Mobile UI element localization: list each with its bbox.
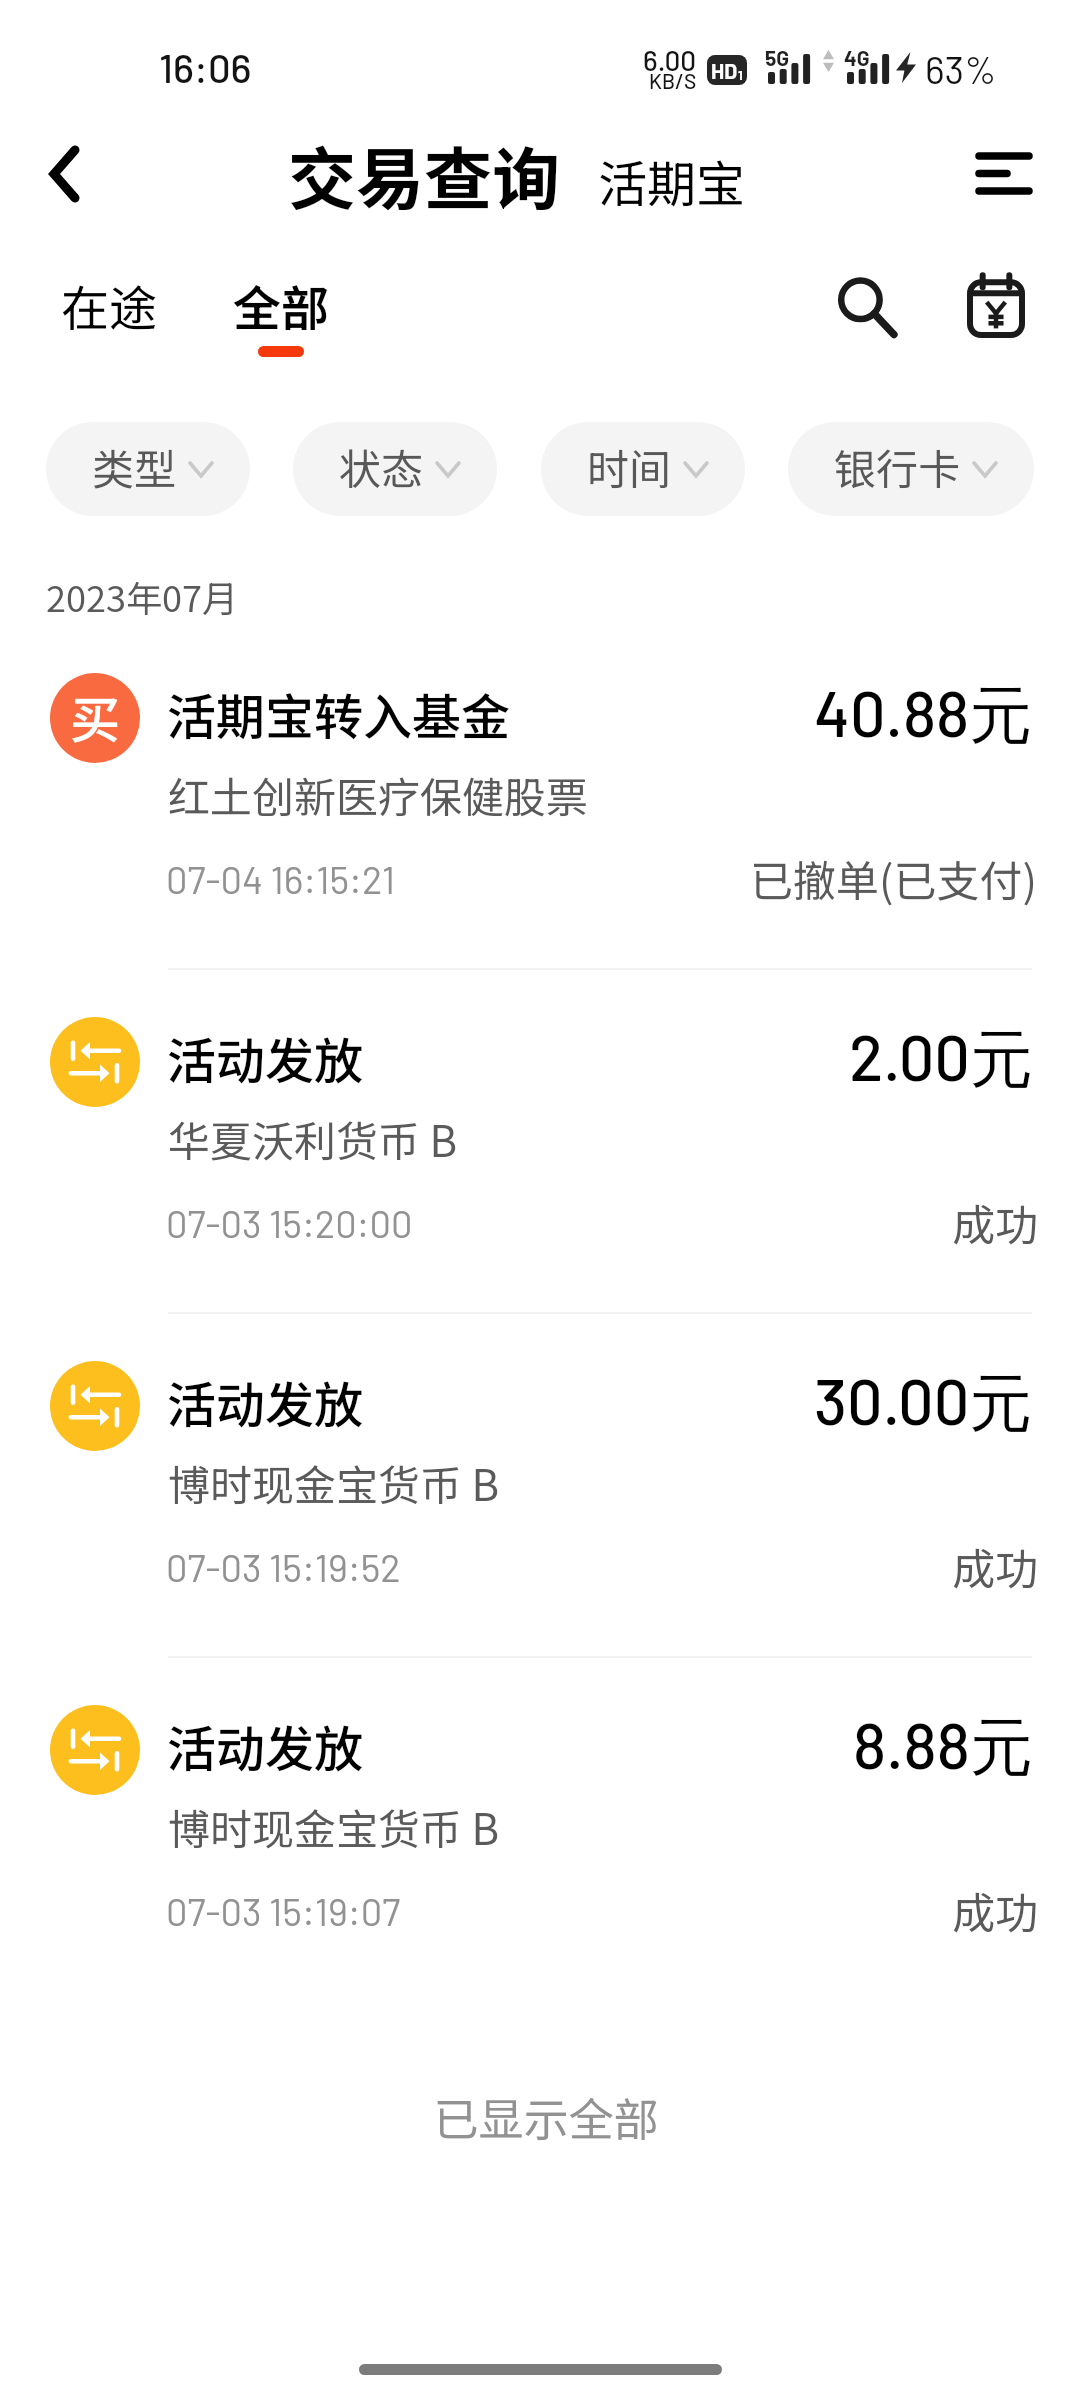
- staticText: 07-03 15:19:07: [166, 1888, 401, 1934]
- staticText: 2.00元: [849, 1018, 1033, 1100]
- staticText: 时间: [587, 436, 672, 497]
- staticText: 07-03 15:20:00: [166, 1200, 413, 1246]
- staticText: 全部: [233, 270, 330, 340]
- staticText: 4G: [844, 45, 870, 70]
- staticText: 活动发放: [167, 1366, 364, 1437]
- staticText: KB/S: [649, 68, 697, 93]
- staticText: 1: [738, 67, 743, 83]
- staticText: 银行卡: [834, 436, 961, 497]
- staticText: 在途: [61, 270, 158, 340]
- staticText: 30.00元: [814, 1362, 1033, 1444]
- button[interactable]: 买: [0, 651, 1080, 995]
- button[interactable]: 银行卡: [788, 422, 1034, 516]
- staticText: 状态: [339, 436, 424, 497]
- staticText: 已撤单(已支付): [750, 847, 1038, 909]
- button[interactable]: 活动发放: [0, 1339, 1080, 1683]
- staticText: 华夏沃利货币 B: [168, 1108, 458, 1169]
- staticText: 07-04 16:15:21: [166, 856, 396, 902]
- button[interactable]: 活动发放: [0, 995, 1080, 1339]
- button[interactable]: 类型: [46, 422, 250, 516]
- button[interactable]: 状态: [293, 422, 497, 516]
- staticText: 07-03 15:19:52: [166, 1544, 401, 1590]
- staticText: 活动发放: [167, 1022, 364, 1093]
- staticText: 活期宝转入基金: [167, 678, 511, 749]
- button[interactable]: Menu: [958, 127, 1050, 219]
- staticText: 63%: [925, 46, 997, 92]
- staticText: 16:06: [159, 43, 252, 91]
- staticText: 5G: [765, 45, 790, 70]
- staticText: 8.88元: [853, 1706, 1033, 1788]
- button[interactable]: 全部: [202, 262, 360, 372]
- staticText: 活动发放: [167, 1710, 364, 1781]
- staticText: 成功: [952, 1879, 1038, 1941]
- button[interactable]: 在途: [30, 262, 188, 372]
- staticText: 已显示全部: [6, 2084, 1080, 2149]
- staticText: 博时现金宝货币 B: [168, 1796, 500, 1857]
- staticText: 买: [70, 680, 120, 752]
- button[interactable]: Calendar: [948, 258, 1044, 354]
- button[interactable]: 活动发放: [0, 1683, 1080, 2027]
- staticText: 成功: [952, 1535, 1038, 1597]
- staticText: 2023年07月: [46, 570, 238, 622]
- staticText: 活期宝: [598, 145, 746, 216]
- staticText: 成功: [952, 1191, 1038, 1253]
- staticText: 类型: [92, 436, 177, 497]
- staticText: 博时现金宝货币 B: [168, 1452, 500, 1513]
- staticText: 红土创新医疗保健股票: [168, 764, 589, 825]
- button[interactable]: Back: [18, 128, 110, 220]
- button[interactable]: Search: [818, 258, 914, 354]
- staticText: HD: [711, 58, 738, 83]
- staticText: 6.00: [643, 43, 697, 77]
- staticText: 40.88元: [814, 674, 1033, 756]
- staticText: 交易查询: [288, 125, 561, 223]
- button[interactable]: 时间: [541, 422, 745, 516]
